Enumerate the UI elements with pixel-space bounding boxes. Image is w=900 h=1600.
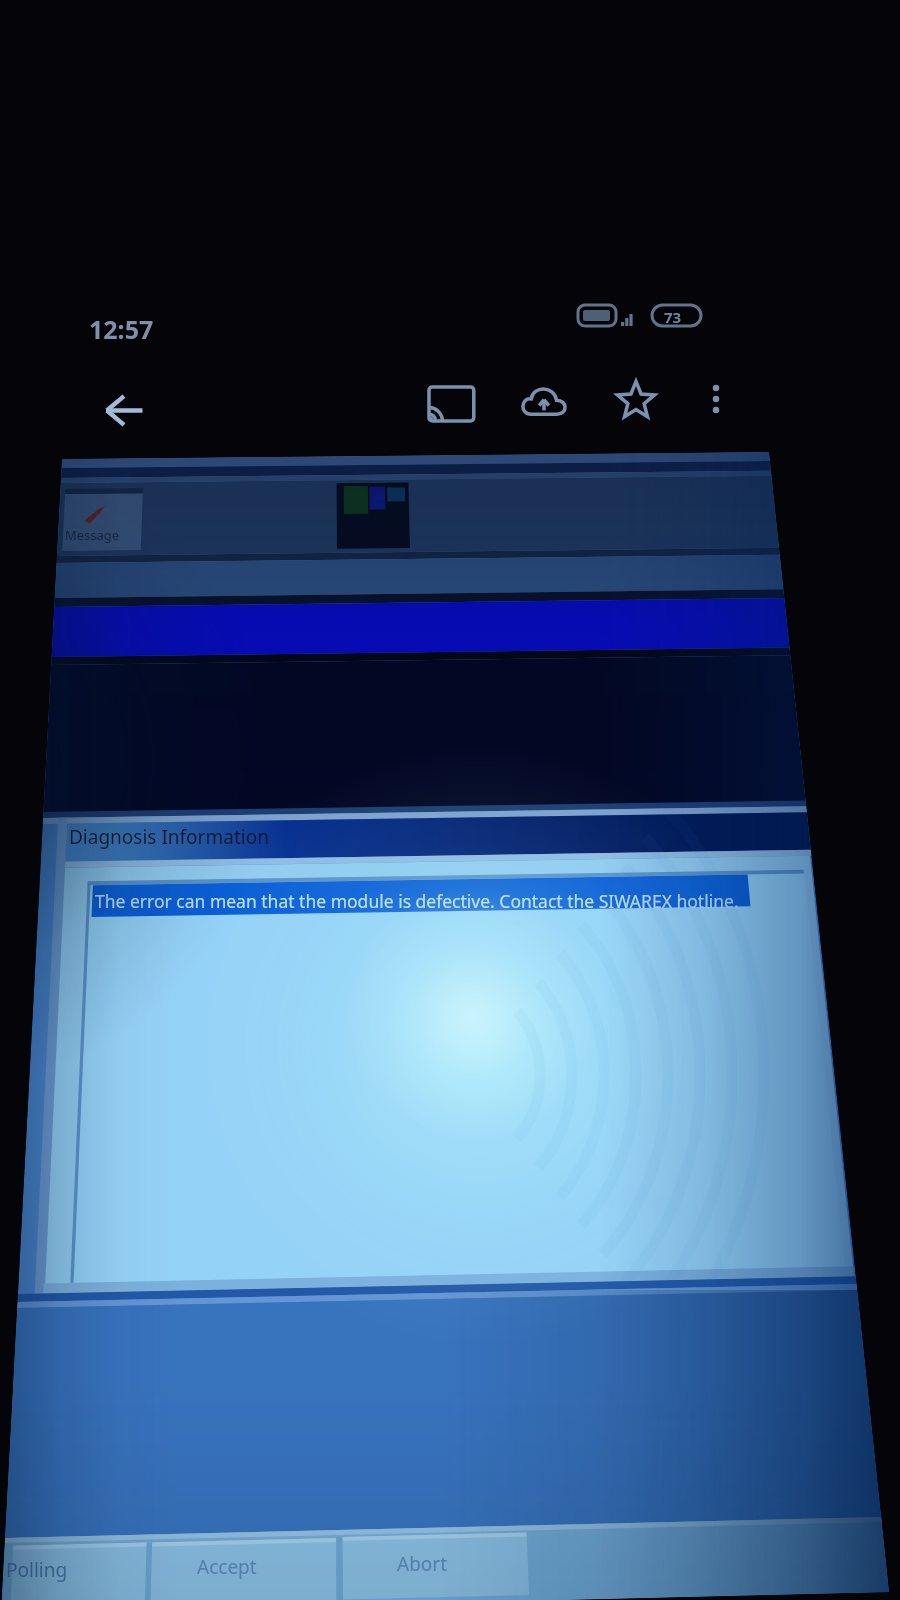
staticText: The error can mean that the module is de…	[95, 889, 739, 913]
button[interactable]: Back	[88, 374, 160, 446]
staticText: 12:57	[89, 312, 154, 346]
staticText: Abort	[397, 1551, 448, 1577]
staticText: Diagnosis Information	[69, 824, 269, 850]
staticText: Polling	[6, 1557, 68, 1583]
button[interactable]: More options	[692, 370, 740, 418]
staticText: 73	[664, 307, 682, 327]
button[interactable]: Cast	[419, 372, 483, 436]
staticText: Accept	[197, 1554, 257, 1580]
button[interactable]: Backup to cloud	[512, 372, 576, 436]
staticText: Message	[65, 526, 120, 544]
button[interactable]: Favorite	[604, 368, 668, 432]
